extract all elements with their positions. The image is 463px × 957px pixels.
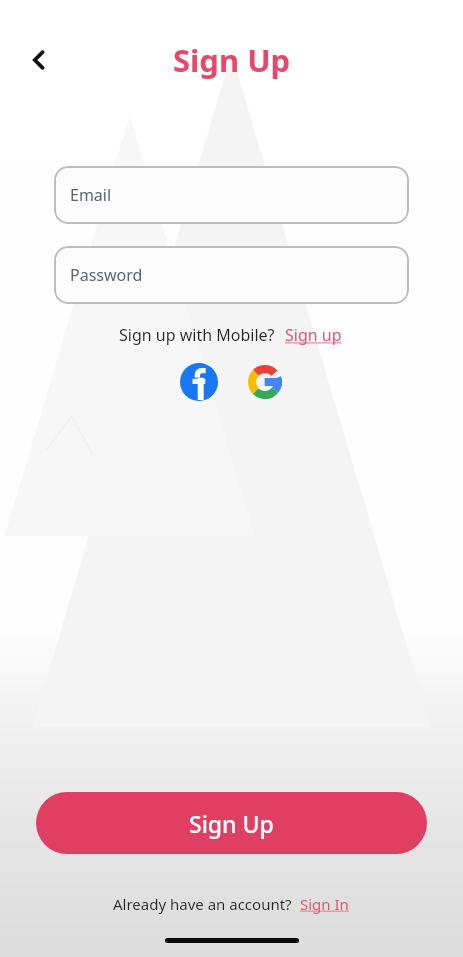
staticText: Sign Up — [173, 39, 291, 81]
button[interactable]: Back — [14, 34, 66, 86]
staticText: Sign up — [285, 324, 342, 346]
staticText: Already have an account? — [113, 894, 292, 914]
staticText: Sign up with Mobile? — [119, 324, 275, 346]
button[interactable]: Sign Up — [36, 792, 427, 854]
button[interactable]: Email — [54, 166, 409, 224]
staticText: Password — [70, 264, 143, 286]
button[interactable]: Password — [54, 246, 409, 304]
staticText: Sign In — [300, 894, 349, 914]
staticText: Sign Up — [189, 808, 274, 839]
button[interactable]: Sign up — [283, 322, 344, 348]
button[interactable]: Sign In — [298, 892, 351, 916]
staticText: Email — [70, 184, 112, 206]
button[interactable]: Sign up with Google — [243, 360, 287, 404]
button[interactable]: Sign up with Facebook — [177, 360, 221, 404]
